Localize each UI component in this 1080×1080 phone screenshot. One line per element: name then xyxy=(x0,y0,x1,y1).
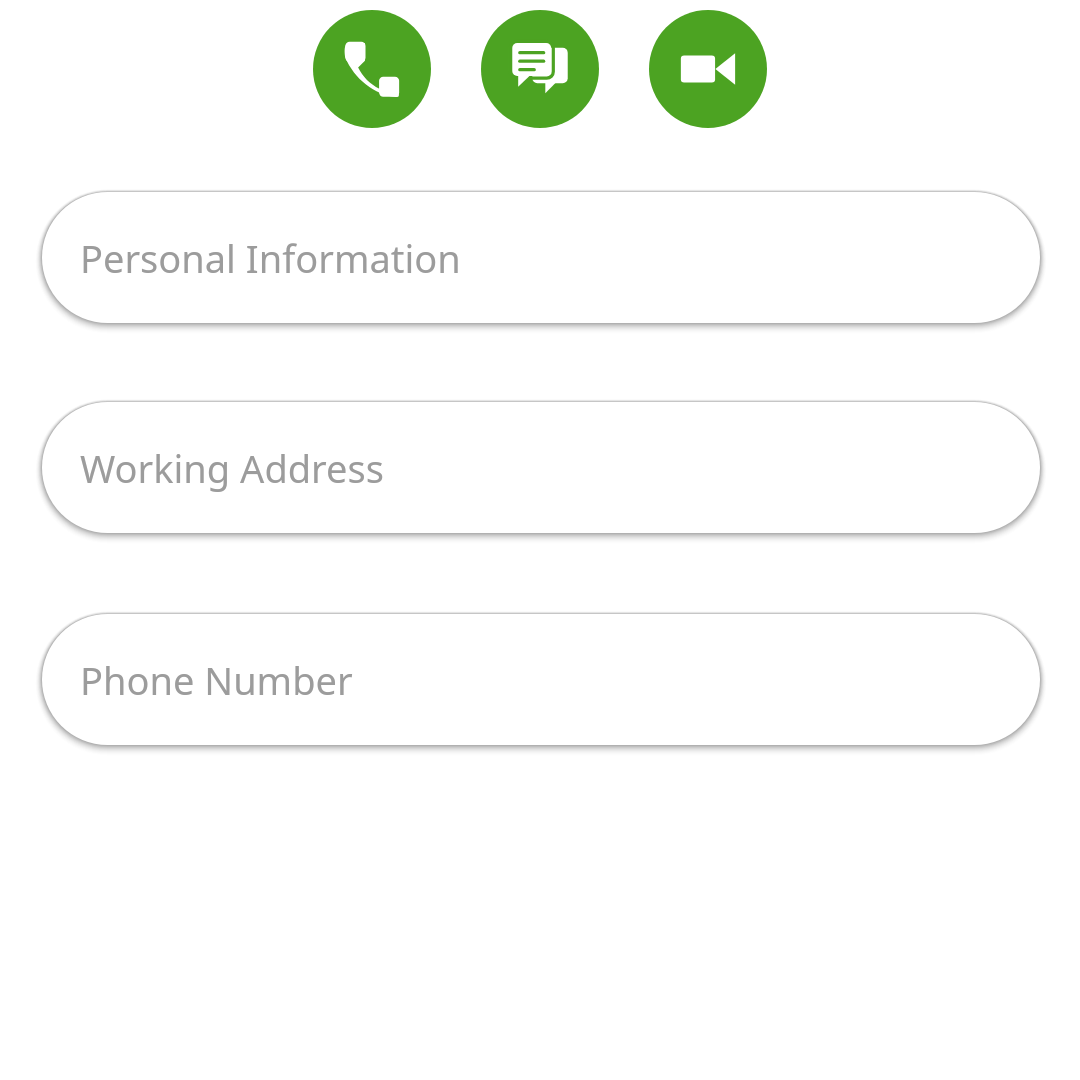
staticText: Phone Number xyxy=(80,654,353,706)
staticText: Personal Information xyxy=(80,232,461,284)
button[interactable]: Call xyxy=(313,10,431,128)
button[interactable]: Phone Number xyxy=(42,614,1040,745)
button[interactable]: Video call xyxy=(649,10,767,128)
button[interactable]: Personal Information xyxy=(42,192,1040,323)
staticText: Working Address xyxy=(80,442,384,494)
button[interactable]: Working Address xyxy=(42,402,1040,533)
button[interactable]: Message xyxy=(481,10,599,128)
